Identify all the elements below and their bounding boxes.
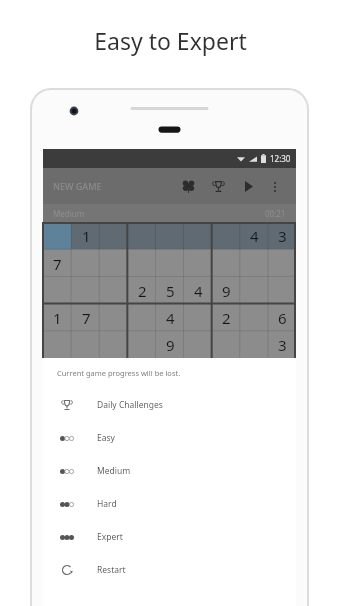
staticText: 6: [278, 308, 287, 328]
button[interactable]: Hints: [177, 175, 200, 198]
button[interactable]: More options: [263, 175, 286, 198]
staticText: Current game progress will be lost.: [57, 368, 181, 378]
staticText: 1: [82, 226, 91, 246]
button[interactable]: Restart: [43, 553, 296, 586]
staticText: Medium: [97, 465, 131, 477]
button[interactable]: Daily Challenges: [43, 388, 296, 421]
staticText: 2: [222, 308, 231, 328]
staticText: Easy to Expert: [94, 25, 247, 56]
button[interactable]: Expert: [43, 520, 296, 553]
button[interactable]: Medium: [43, 454, 296, 487]
staticText: NEW GAME: [53, 180, 102, 192]
staticText: 7: [82, 308, 91, 328]
staticText: 3: [278, 226, 287, 246]
staticText: Daily Challenges: [97, 399, 163, 411]
button[interactable]: Trophy: [207, 175, 230, 198]
staticText: 1: [53, 308, 62, 328]
staticText: Medium: [53, 208, 85, 219]
staticText: Expert: [97, 531, 123, 543]
staticText: Hard: [97, 498, 117, 510]
staticText: 00:21: [265, 208, 286, 219]
button[interactable]: Easy: [43, 421, 296, 454]
button[interactable]: Play: [237, 175, 260, 198]
staticText: 3: [278, 335, 287, 355]
staticText: 7: [53, 254, 62, 274]
staticText: Restart: [97, 564, 126, 576]
staticText: 4: [166, 308, 175, 328]
button[interactable]: Hard: [43, 487, 296, 520]
staticText: 5: [166, 281, 175, 301]
staticText: Easy: [97, 432, 115, 444]
staticText: 4: [250, 226, 259, 246]
staticText: 2: [138, 281, 147, 301]
staticText: 9: [166, 335, 175, 355]
staticText: 4: [194, 281, 203, 301]
staticText: 12:30: [270, 153, 291, 164]
staticText: 9: [222, 281, 231, 301]
